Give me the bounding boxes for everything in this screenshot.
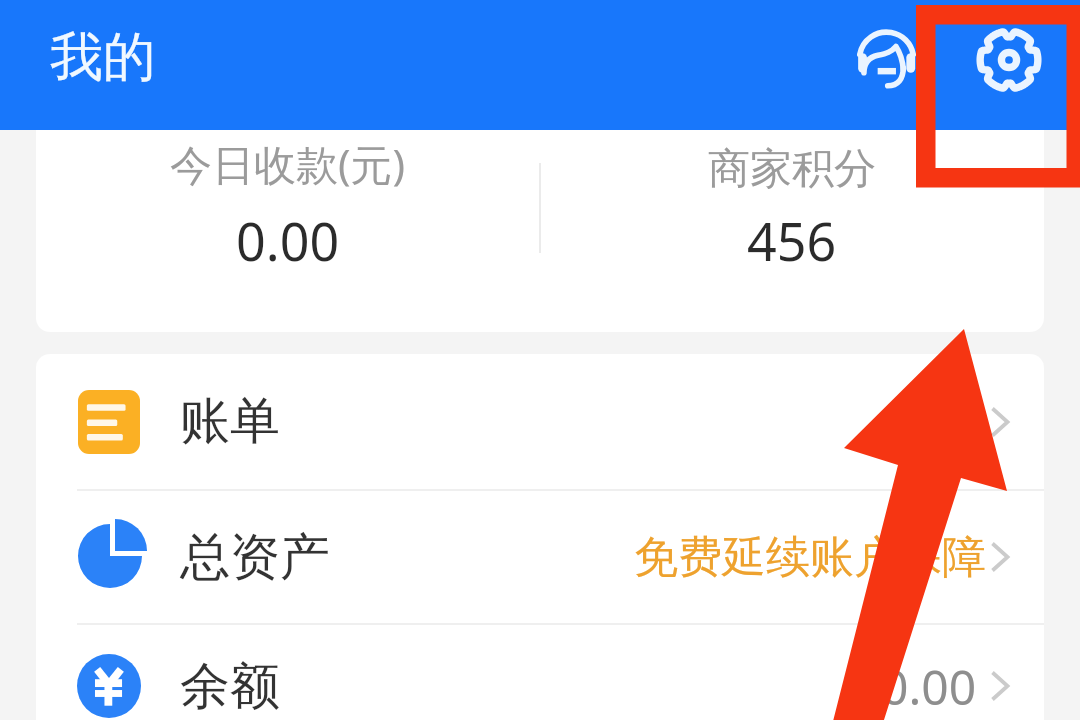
button[interactable]: 今日收款(元) <box>36 130 540 332</box>
button[interactable]: Customer service <box>843 17 929 103</box>
staticText: 免费延续账户保障 <box>634 530 986 585</box>
button[interactable]: Settings <box>966 17 1052 103</box>
staticText: 总资产 <box>180 526 330 589</box>
staticText: 456 <box>747 205 837 276</box>
staticText: 0.00 <box>236 205 340 276</box>
staticText: 我的 <box>50 24 156 91</box>
button[interactable]: 商家积分 <box>540 130 1044 332</box>
button[interactable]: 余额 <box>36 625 1044 720</box>
staticText: 账单 <box>180 390 280 453</box>
staticText: 商家积分 <box>708 143 876 196</box>
button[interactable]: 总资产 <box>36 491 1044 623</box>
button[interactable]: 账单 <box>36 354 1044 489</box>
staticText: 0.00 <box>881 654 977 719</box>
staticText: 余额 <box>180 655 280 718</box>
staticText: 今日收款(元) <box>170 135 406 192</box>
